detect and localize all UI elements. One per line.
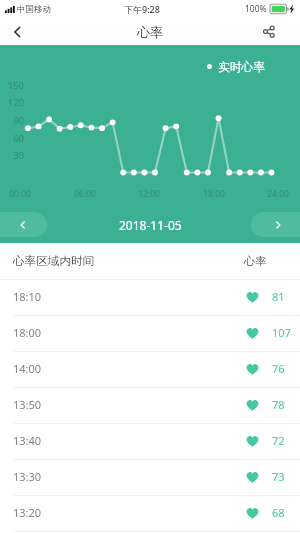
staticText: 18:10 — [13, 289, 42, 304]
button[interactable]: Previous day — [0, 212, 47, 237]
button[interactable]: Share — [252, 18, 286, 45]
staticText: 60 — [0, 132, 24, 145]
staticText: 00:00 — [5, 188, 35, 200]
staticText: 中国移动 — [17, 4, 51, 15]
button[interactable]: 18:00 — [0, 316, 300, 351]
staticText: 90 — [0, 114, 24, 127]
button[interactable]: 13:40 — [0, 424, 300, 459]
staticText: 24:00 — [263, 188, 293, 200]
staticText: 心率 — [137, 24, 163, 40]
staticText: 100% — [245, 3, 267, 15]
staticText: 18:00 — [199, 188, 229, 200]
staticText: 76 — [272, 361, 285, 376]
staticText: 72 — [272, 433, 285, 448]
staticText: 78 — [272, 397, 285, 412]
staticText: 实时心率 — [218, 60, 266, 75]
staticText: 2018-11-05 — [119, 217, 182, 233]
staticText: 150 — [0, 79, 24, 92]
staticText: 14:00 — [13, 361, 42, 376]
staticText: 68 — [272, 505, 285, 520]
staticText: 13:40 — [13, 433, 42, 448]
staticText: 13:50 — [13, 397, 42, 412]
button[interactable]: Next day — [251, 212, 300, 237]
staticText: 13:30 — [13, 469, 42, 484]
staticText: 81 — [272, 289, 285, 304]
staticText: 心率区域内时间 — [13, 254, 95, 269]
staticText: 13:20 — [13, 505, 42, 520]
staticText: 06:00 — [70, 188, 100, 200]
staticText: 107 — [272, 325, 291, 340]
staticText: 下午9:28 — [124, 3, 160, 15]
button[interactable]: 13:50 — [0, 388, 300, 423]
staticText: 30 — [0, 149, 24, 162]
button[interactable]: 14:00 — [0, 352, 300, 387]
button[interactable]: 18:10 — [0, 280, 300, 315]
staticText: 73 — [272, 469, 285, 484]
button[interactable]: 13:30 — [0, 460, 300, 495]
staticText: 12:00 — [134, 188, 164, 200]
staticText: 18:00 — [13, 325, 42, 340]
button[interactable]: 13:20 — [0, 496, 300, 531]
staticText: 120 — [0, 96, 24, 109]
button[interactable]: Back — [0, 18, 34, 45]
staticText: 心率 — [244, 254, 267, 268]
